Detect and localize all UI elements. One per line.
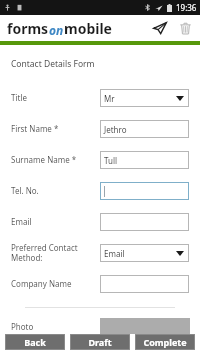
staticText: Jethro xyxy=(104,124,127,135)
staticText: Title xyxy=(11,92,100,103)
staticText: on xyxy=(49,22,64,38)
button[interactable]: Mr xyxy=(100,89,189,107)
staticText: First Name * xyxy=(11,123,100,134)
staticText: Surname Name * xyxy=(11,154,100,165)
button[interactable]: Complete xyxy=(135,334,195,350)
staticText: Preferred Contact Method: xyxy=(11,242,100,263)
staticText: forms xyxy=(7,19,49,38)
staticText: Email xyxy=(104,248,176,259)
button[interactable]: Tull xyxy=(100,151,189,169)
staticText: Company Name xyxy=(11,278,100,289)
staticText: Draft xyxy=(88,336,112,348)
button[interactable] xyxy=(100,275,189,293)
staticText: Tull xyxy=(104,155,118,166)
staticText: Photo xyxy=(11,321,100,332)
staticText: Contact Details Form xyxy=(11,58,95,70)
staticText: Complete xyxy=(143,336,187,348)
staticText: Email xyxy=(11,216,100,227)
staticText: Mr xyxy=(104,93,176,104)
staticText: Tel. No. xyxy=(11,185,100,196)
button[interactable]: Draft xyxy=(70,334,130,350)
button[interactable]: Back xyxy=(5,334,65,350)
button[interactable] xyxy=(100,213,189,231)
button[interactable]: Email xyxy=(100,244,189,262)
button[interactable]: Delete xyxy=(176,19,194,37)
staticText: Back xyxy=(24,336,46,348)
staticText: 19:36 xyxy=(176,2,197,13)
button[interactable] xyxy=(100,182,189,200)
button[interactable]: Jethro xyxy=(100,120,189,138)
staticText: mobile xyxy=(64,19,112,38)
button[interactable]: Send xyxy=(151,19,169,37)
